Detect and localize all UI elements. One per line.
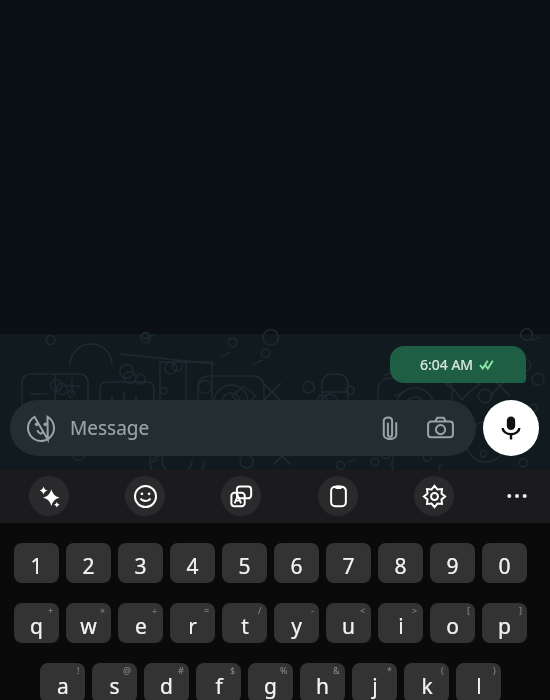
button[interactable]: d [144,663,189,700]
button[interactable]: 4 [170,543,215,583]
button[interactable]: q [14,603,59,643]
staticText: ] [519,604,522,616]
button[interactable]: 0 [482,543,527,583]
staticText: i [398,612,404,641]
staticText: p [498,612,511,641]
staticText: ) [493,664,496,676]
button[interactable]: Settings [414,476,454,516]
button[interactable]: o [430,603,475,643]
button[interactable]: 2 [66,543,111,583]
button[interactable]: f [196,663,241,700]
staticText: ÷ [152,604,158,616]
staticText: o [446,612,459,641]
staticText: 0 [498,552,511,581]
button[interactable]: Stickers [10,400,476,456]
staticText: × [100,604,106,616]
button[interactable]: a [40,663,85,700]
button[interactable]: k [404,663,449,700]
button[interactable]: r [170,603,215,643]
staticText: 1 [30,552,43,581]
staticText: w [80,612,97,641]
staticText: $ [230,664,236,676]
button[interactable]: 3 [118,543,163,583]
staticText: 6:04 AM [420,355,474,374]
button[interactable]: g [248,663,293,700]
staticText: g [264,672,277,700]
staticText: t [241,612,249,641]
staticText: l [476,672,482,700]
button[interactable]: j [352,663,397,700]
staticText: d [160,672,173,700]
staticText: & [333,664,340,676]
staticText: u [342,612,355,641]
button[interactable]: More options [497,476,537,516]
button[interactable]: Attach [372,410,408,446]
staticText: h [316,672,329,700]
staticText: k [421,672,433,700]
staticText: * [387,664,392,676]
staticText: % [280,664,288,676]
staticText: f [215,672,223,700]
staticText: q [30,612,43,641]
button[interactable]: e [118,603,163,643]
button[interactable]: Assist [29,476,69,516]
staticText: e [135,612,147,641]
staticText: a [57,672,69,700]
staticText: y [291,612,302,641]
staticText: = [204,604,210,616]
staticText: - [311,604,314,616]
button[interactable]: s [92,663,137,700]
staticText: 8 [394,552,407,581]
button[interactable]: Camera [422,410,458,446]
staticText: # [178,664,184,676]
button[interactable]: Clipboard [318,476,358,516]
button[interactable]: u [326,603,371,643]
button[interactable]: Translate [221,476,261,516]
button[interactable]: t [222,603,267,643]
staticText: > [412,604,418,616]
staticText: 2 [82,552,95,581]
staticText: 3 [134,552,147,581]
staticText: / [258,604,262,616]
button[interactable]: l [456,663,501,700]
button[interactable]: Voice message [483,400,539,456]
button[interactable]: y [274,603,319,643]
staticText: Message [70,415,150,441]
button[interactable]: Stickers [24,411,58,445]
button[interactable]: 8 [378,543,423,583]
button[interactable]: i [378,603,423,643]
staticText: ( [441,664,444,676]
staticText: r [188,612,197,641]
staticText: 7 [342,552,355,581]
button[interactable]: p [482,603,527,643]
staticText: 5 [238,552,251,581]
staticText: 4 [186,552,199,581]
staticText: ! [77,664,80,676]
staticText: 9 [446,552,459,581]
button[interactable]: 6 [274,543,319,583]
button[interactable]: w [66,603,111,643]
button[interactable]: 6:04 AM [390,346,526,383]
button[interactable]: Emoji [125,476,165,516]
button[interactable]: 1 [14,543,59,583]
staticText: [ [467,604,470,616]
button[interactable]: 7 [326,543,371,583]
staticText: < [360,604,366,616]
staticText: 6 [290,552,303,581]
button[interactable]: 9 [430,543,475,583]
button[interactable]: h [300,663,345,700]
staticText: s [109,672,120,700]
button[interactable]: 5 [222,543,267,583]
staticText: j [372,672,378,700]
staticText: + [48,604,54,616]
staticText: @ [123,664,132,676]
